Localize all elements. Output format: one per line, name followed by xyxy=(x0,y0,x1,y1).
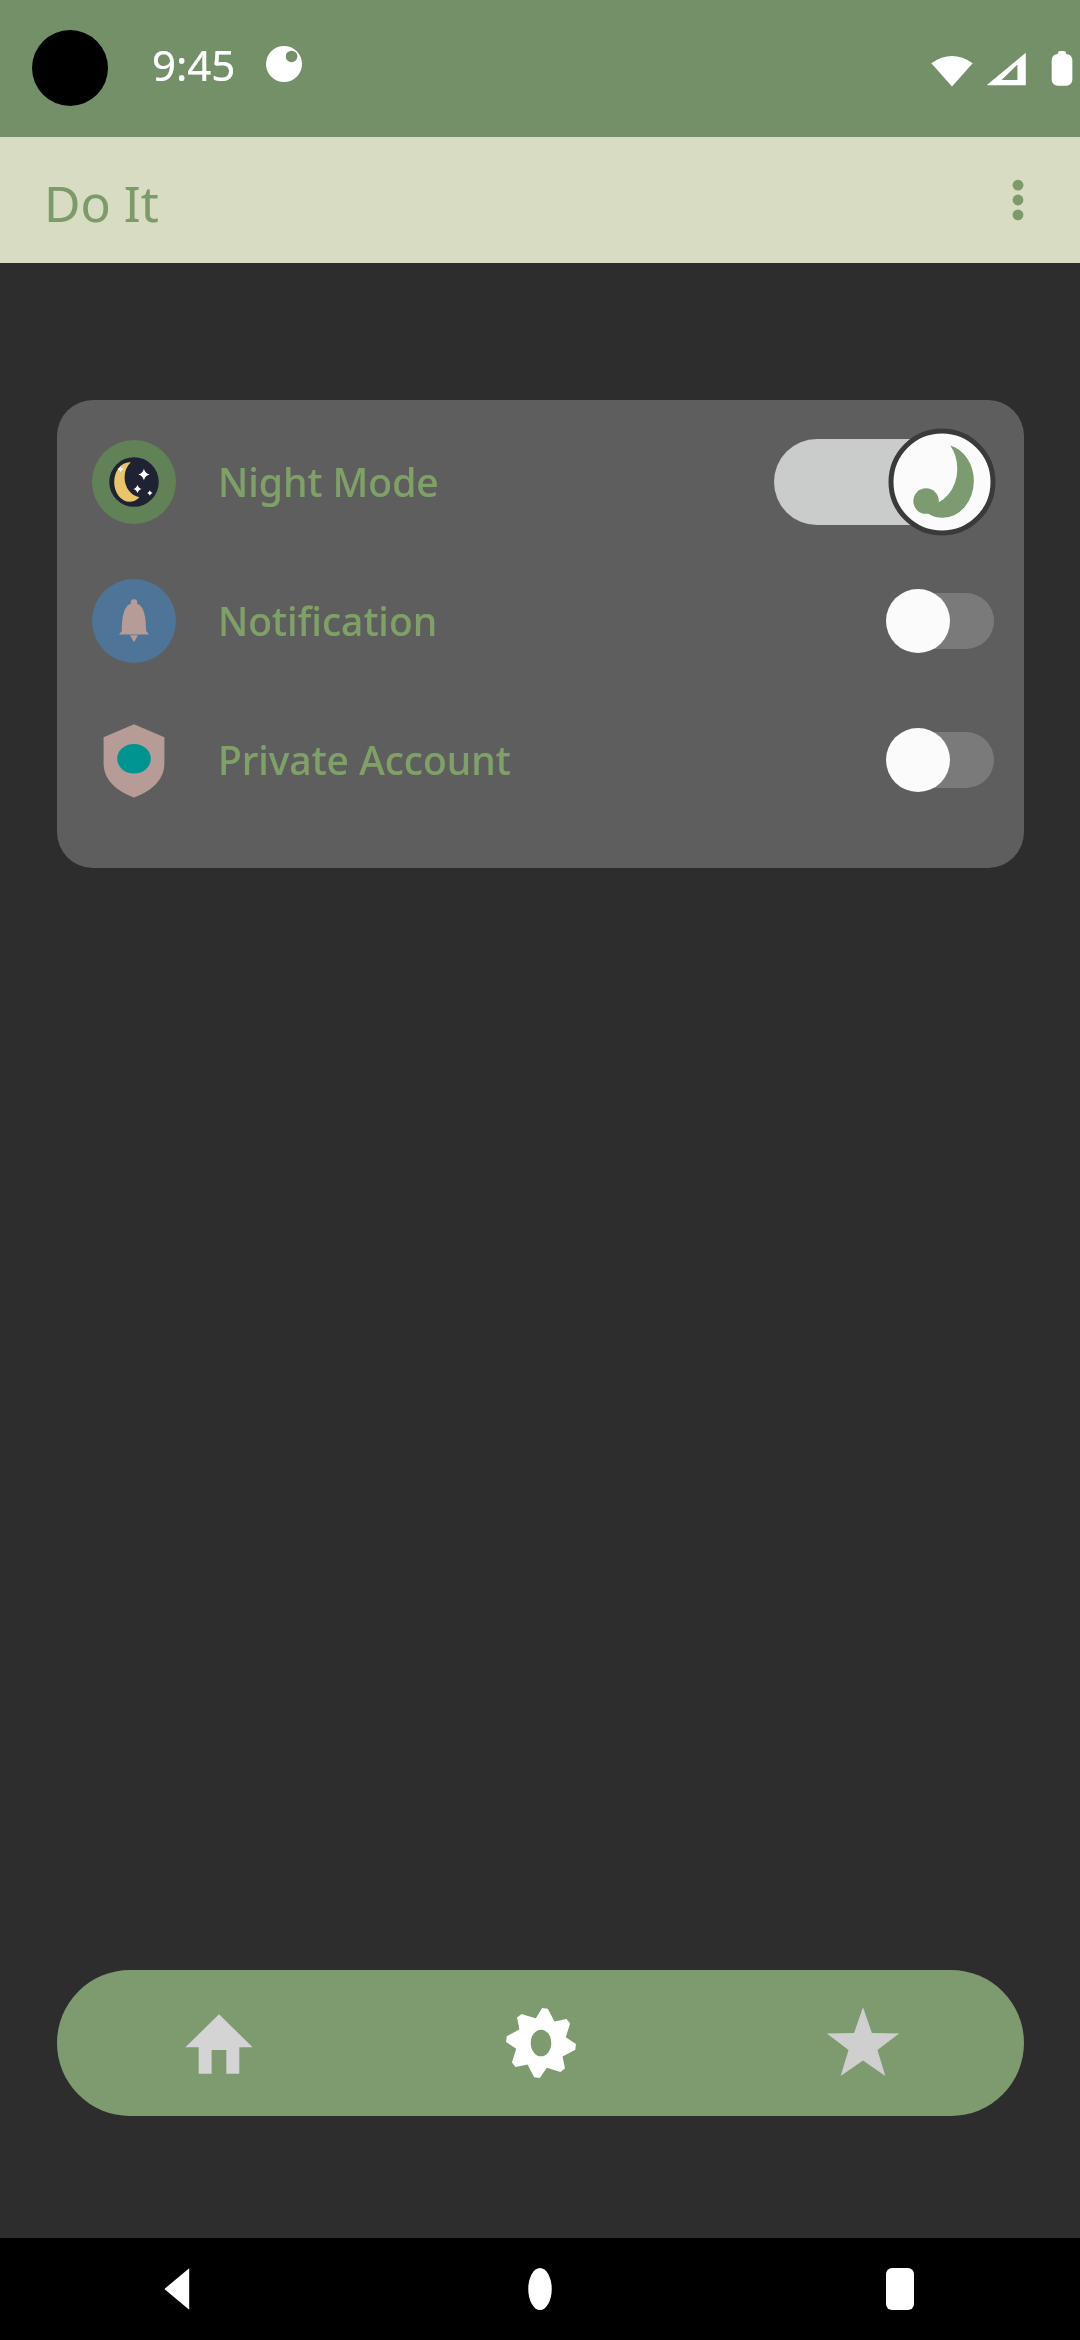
button[interactable]: Toggle off xyxy=(886,579,996,663)
button[interactable]: Private Account xyxy=(57,690,1024,829)
staticText: Do It xyxy=(44,169,159,237)
button[interactable]: Notification xyxy=(57,551,1024,690)
staticText: Notification xyxy=(218,594,438,647)
button[interactable]: Night Mode on xyxy=(774,428,996,536)
button[interactable]: Back xyxy=(0,2238,360,2340)
button[interactable]: Night Mode xyxy=(57,412,1024,551)
button[interactable]: More options xyxy=(968,150,1068,250)
staticText: 9:45 xyxy=(152,36,236,93)
button[interactable]: Favourites xyxy=(702,1970,1024,2116)
button[interactable]: Toggle off xyxy=(886,718,996,802)
button[interactable]: Recent apps xyxy=(720,2238,1080,2340)
button[interactable]: Settings xyxy=(380,1970,702,2116)
button[interactable]: Home xyxy=(57,1970,380,2116)
staticText: Night Mode xyxy=(218,455,439,508)
button[interactable]: Home xyxy=(360,2238,720,2340)
staticText: Private Account xyxy=(218,733,511,786)
